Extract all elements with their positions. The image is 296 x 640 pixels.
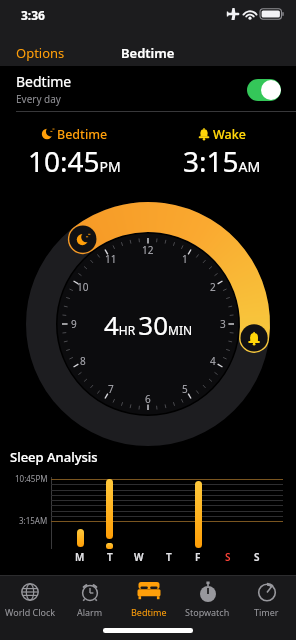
button[interactable]: World Clock xyxy=(0,581,60,618)
staticText: 10:45PM xyxy=(15,473,48,484)
staticText: 12 xyxy=(142,243,154,257)
staticText: W xyxy=(134,550,144,564)
staticText: 10:45PM xyxy=(28,142,121,180)
staticText: 3:36 xyxy=(21,7,45,23)
button[interactable]: Timer xyxy=(237,581,296,618)
button[interactable]: Stopwatch xyxy=(178,581,237,618)
staticText: 3:15AM xyxy=(183,142,261,180)
staticText: S xyxy=(254,550,260,564)
staticText: 4 xyxy=(210,354,216,368)
staticText: Sleep Analysis xyxy=(10,448,98,466)
staticText: 2 xyxy=(210,280,216,294)
staticText: T xyxy=(107,550,113,564)
staticText: Bedtime xyxy=(121,44,175,62)
staticText: 1 xyxy=(182,252,188,266)
staticText: Wake xyxy=(213,126,246,141)
staticText: 3:15AM xyxy=(19,515,48,526)
staticText: 11 xyxy=(105,252,117,266)
staticText: Bedtime xyxy=(131,606,167,618)
staticText: 6 xyxy=(145,392,151,406)
staticText: 4HR 30MIN xyxy=(104,307,193,342)
button[interactable]: Alarm xyxy=(60,581,119,618)
staticText: Timer xyxy=(254,606,279,618)
staticText: World Clock xyxy=(5,606,56,618)
staticText: 7 xyxy=(108,382,114,396)
staticText: F xyxy=(195,550,201,564)
button[interactable] xyxy=(247,79,281,101)
staticText: 9 xyxy=(71,317,77,331)
staticText: 3 xyxy=(220,317,226,331)
staticText: Stopwatch xyxy=(185,606,230,618)
staticText: Bedtime xyxy=(16,72,72,91)
staticText: M xyxy=(75,550,85,564)
staticText: T xyxy=(166,550,172,564)
staticText: 5 xyxy=(182,382,188,396)
staticText: 8 xyxy=(80,354,86,368)
staticText: Alarm xyxy=(77,606,103,618)
staticText: Bedtime xyxy=(57,126,108,141)
button[interactable]: Options xyxy=(10,38,71,68)
staticText: 10 xyxy=(77,280,89,294)
staticText: Options xyxy=(16,44,65,62)
button[interactable]: Bedtime xyxy=(119,581,178,618)
staticText: S xyxy=(225,550,231,564)
staticText: Every day xyxy=(16,92,61,106)
